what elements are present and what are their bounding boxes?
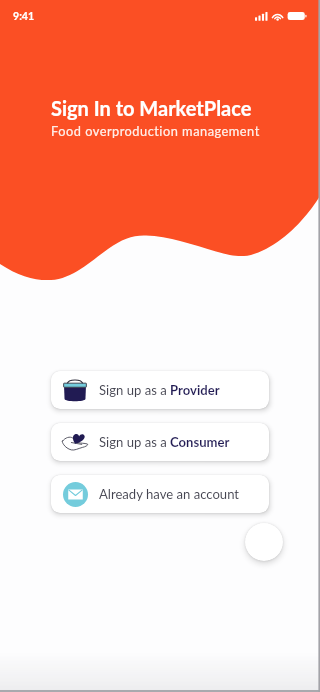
button[interactable]: Sign up as a Provider (51, 371, 269, 409)
staticText: 9:41 (13, 10, 35, 23)
button[interactable]: Sign up as a Consumer (51, 423, 269, 461)
staticText: Food overproduction management (51, 123, 260, 138)
staticText: Sign up as a Consumer (99, 434, 230, 450)
button[interactable]: More options (245, 523, 283, 561)
staticText: Sign In to MarketPlace (51, 96, 252, 120)
button[interactable]: Already have an account (51, 475, 269, 513)
staticText: Sign up as a Provider (99, 382, 220, 398)
staticText: Already have an account (99, 486, 240, 502)
